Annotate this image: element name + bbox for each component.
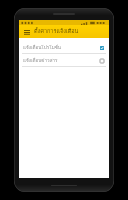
staticText: แจ้งเตือนข่าวสาร [23, 57, 58, 64]
button[interactable]: แจ้งเตือนโปรโมชั่น [19, 41, 109, 53]
staticText: ตั้งค่าการแจ้งเตือน [34, 27, 106, 36]
staticText: แจ้งเตือนโปรโมชั่น [23, 44, 61, 51]
button[interactable]: Menu [22, 27, 31, 36]
button[interactable]: Disabled [98, 57, 105, 64]
button[interactable]: Enabled [98, 44, 105, 51]
button[interactable]: แจ้งเตือนข่าวสาร [19, 54, 109, 66]
